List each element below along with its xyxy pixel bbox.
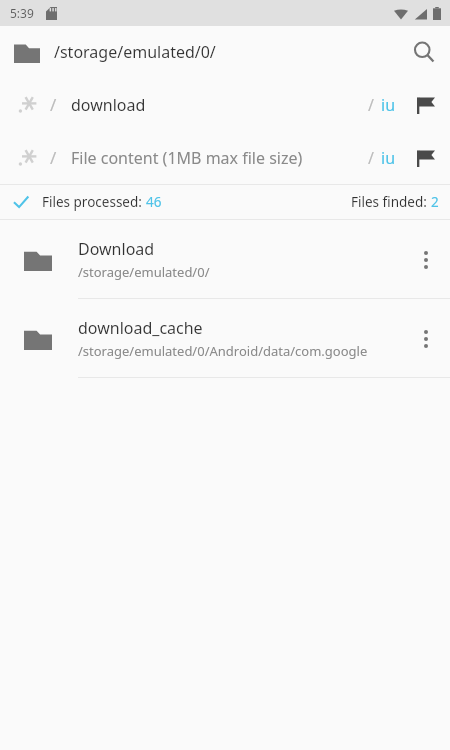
staticText: download_cache: [78, 317, 203, 339]
button[interactable]: More options: [404, 299, 448, 378]
staticText: /: [368, 147, 374, 169]
staticText: File content (1MB max file size): [71, 147, 303, 169]
button[interactable]: Search: [398, 26, 450, 78]
button[interactable]: /: [0, 131, 450, 184]
button[interactable]: Download: [0, 220, 450, 299]
staticText: /storage/emulated/0/: [54, 41, 216, 63]
staticText: /: [50, 93, 57, 116]
staticText: 2: [431, 193, 439, 211]
staticText: download: [71, 94, 146, 116]
staticText: /: [50, 146, 57, 169]
staticText: Files processed:: [42, 193, 146, 211]
staticText: Files finded:: [351, 193, 431, 211]
staticText: /storage/emulated/0/Android/data/com.goo…: [78, 342, 368, 360]
button[interactable]: More options: [404, 220, 448, 299]
staticText: iu: [381, 147, 396, 169]
button[interactable]: Flags: [410, 142, 442, 174]
staticText: /: [368, 94, 374, 116]
button[interactable]: Flags: [410, 89, 442, 121]
staticText: /storage/emulated/0/: [78, 263, 210, 281]
staticText: iu: [381, 94, 396, 116]
staticText: 46: [146, 193, 162, 211]
button[interactable]: Files processed:: [0, 185, 450, 219]
button[interactable]: /: [0, 78, 450, 131]
staticText: 5:39: [10, 5, 34, 21]
staticText: Download: [78, 238, 155, 260]
button[interactable]: download_cache: [0, 299, 450, 378]
